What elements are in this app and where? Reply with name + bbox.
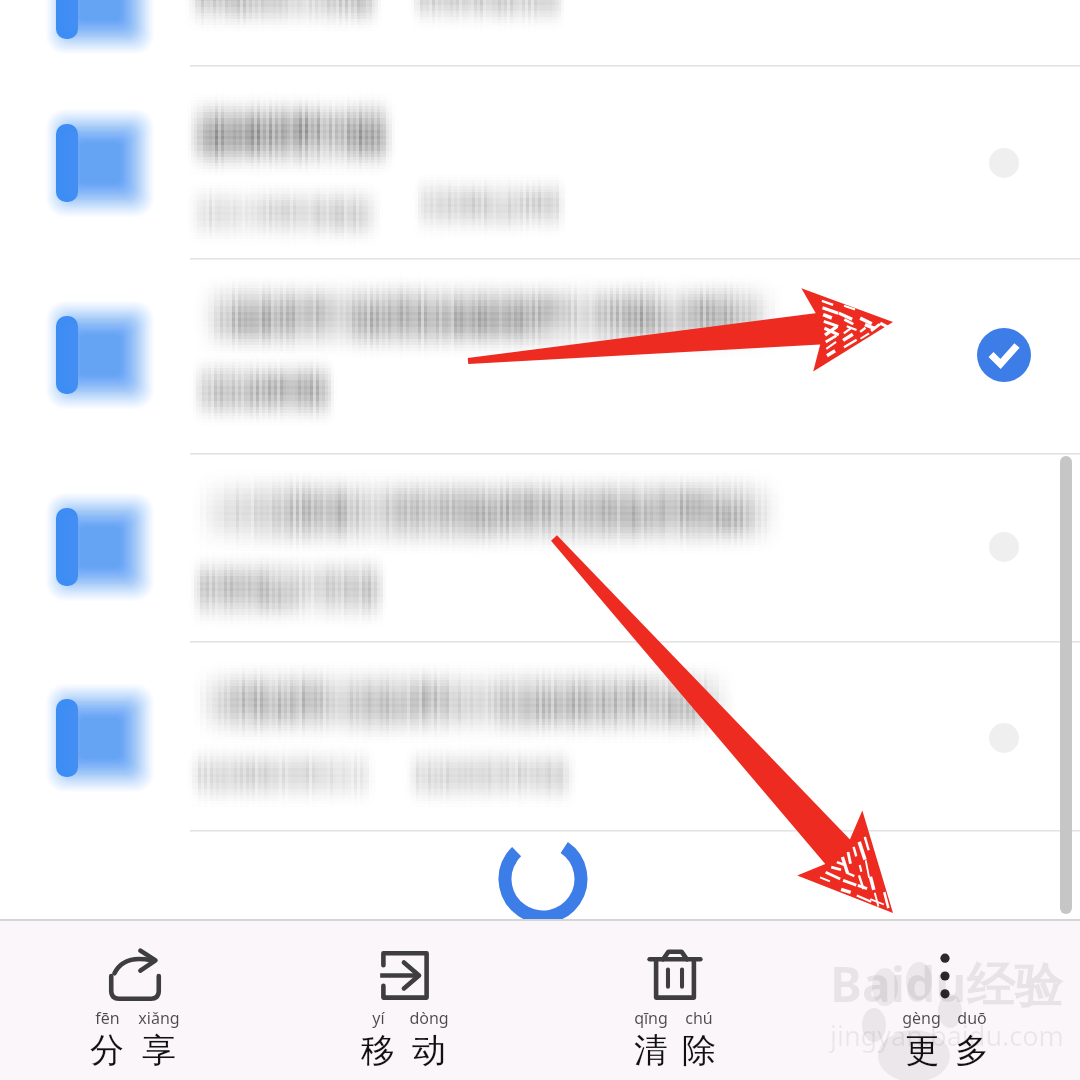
staticText: fēn xyxy=(95,1007,120,1029)
button[interactable]: Selected xyxy=(0,258,1080,453)
button[interactable]: Select xyxy=(972,517,1032,577)
staticText: Baidu经验 xyxy=(830,951,1063,1017)
staticText: 更 xyxy=(905,1029,939,1072)
staticText: 分 xyxy=(90,1029,124,1072)
staticText: duō xyxy=(957,1007,987,1029)
button[interactable]: Select xyxy=(0,0,1080,65)
button[interactable]: Select xyxy=(972,706,1032,766)
staticText: 除 xyxy=(682,1029,716,1072)
staticText: xiǎng xyxy=(138,1007,180,1029)
staticText: dòng xyxy=(409,1007,449,1029)
staticText: 清 xyxy=(634,1029,668,1072)
staticText: 动 xyxy=(412,1029,446,1072)
staticText: 多 xyxy=(955,1029,989,1072)
button[interactable]: Select xyxy=(0,65,1080,258)
button[interactable]: Delete xyxy=(540,921,810,1072)
staticText: jingyan.baidu.com xyxy=(830,1017,1064,1054)
button[interactable]: Select xyxy=(0,453,1080,641)
button[interactable]: Select xyxy=(0,641,1080,830)
staticText: 移 xyxy=(361,1029,395,1072)
button[interactable]: Select xyxy=(972,132,1032,192)
staticText: yí xyxy=(372,1007,385,1029)
staticText: gèng xyxy=(902,1007,941,1029)
staticText: chú xyxy=(685,1007,713,1029)
button[interactable]: Move xyxy=(270,921,540,1072)
staticText: 享 xyxy=(142,1029,176,1072)
staticText: qīng xyxy=(634,1007,668,1029)
button[interactable]: Share xyxy=(0,921,270,1072)
button[interactable]: Selected xyxy=(972,326,1032,386)
button[interactable]: More xyxy=(810,921,1080,1072)
